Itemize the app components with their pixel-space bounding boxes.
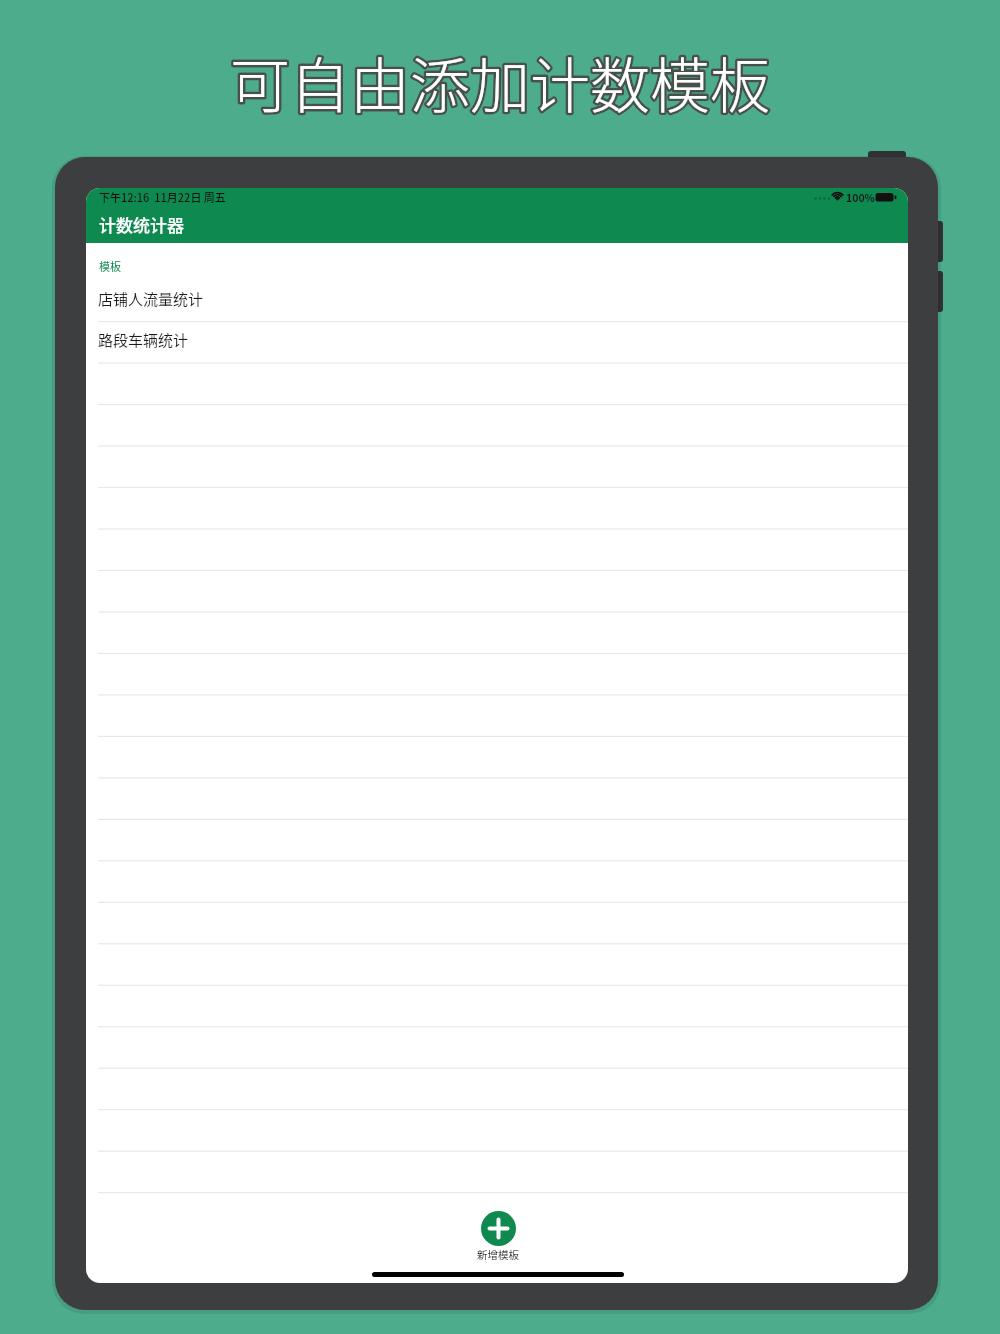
- staticText: 可自由添加计数模板: [230, 38, 770, 125]
- staticText: 100%: [846, 190, 875, 205]
- staticText: 下午12:16 11月22日 周五: [99, 189, 226, 205]
- staticText: 店铺人流量统计: [98, 288, 204, 310]
- staticText: 计数统计器: [99, 212, 184, 237]
- button[interactable]: 路段车辆统计: [86, 321, 908, 363]
- staticText: 新增模板: [477, 1247, 519, 1262]
- staticText: 模板: [99, 258, 121, 274]
- staticText: 路段车辆统计: [98, 329, 189, 351]
- staticText: 可自由添加计数模板: [230, 38, 770, 125]
- button[interactable]: 新增模板: [458, 1211, 538, 1262]
- button[interactable]: 店铺人流量统计: [86, 280, 908, 322]
